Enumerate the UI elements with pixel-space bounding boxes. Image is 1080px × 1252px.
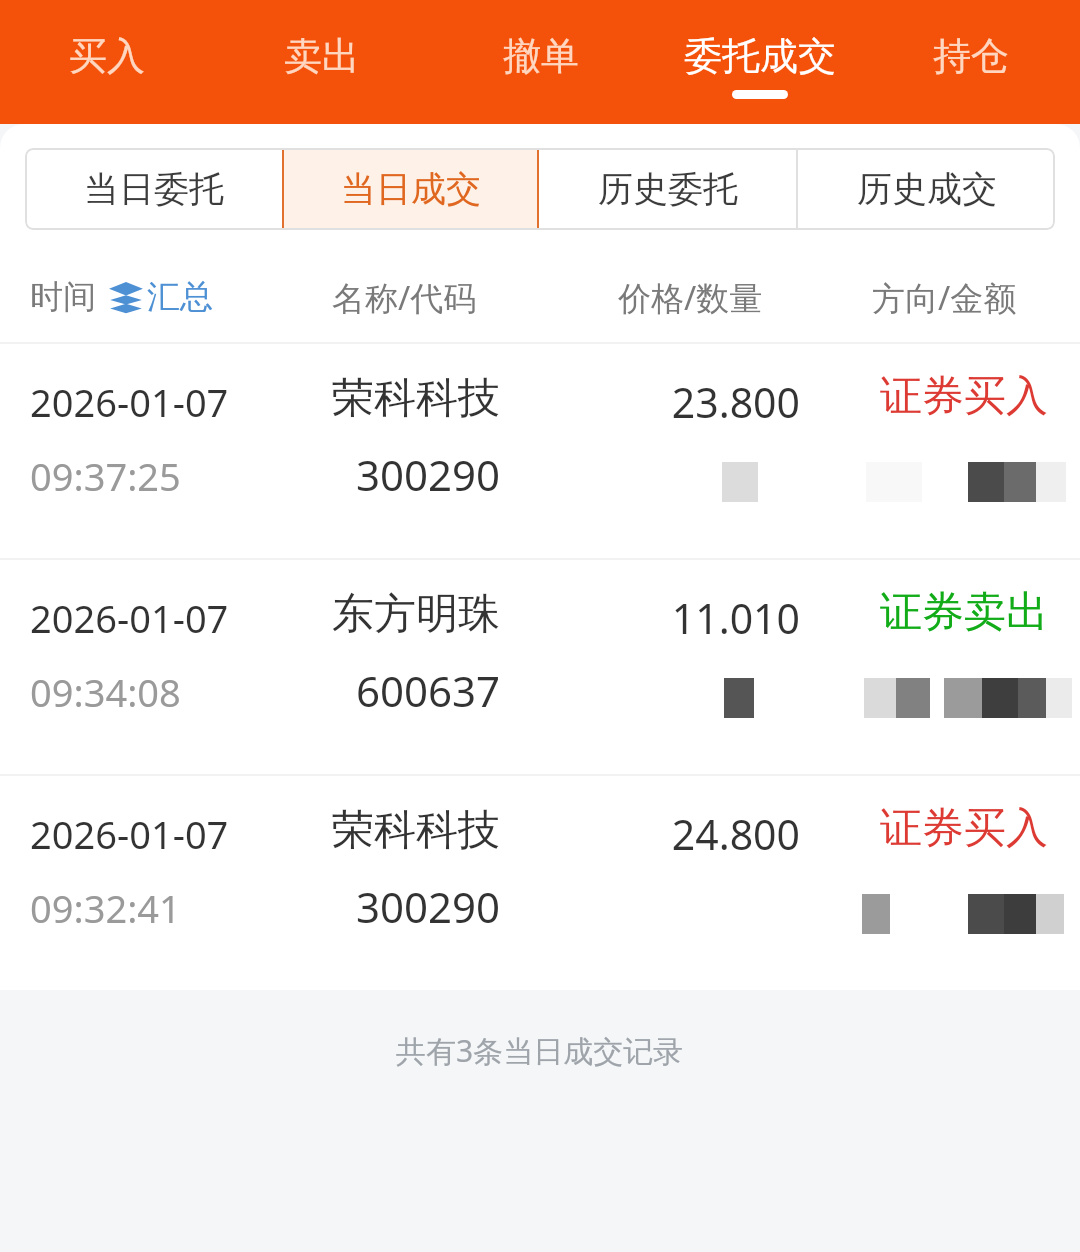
- staticText: 历史成交: [857, 167, 997, 211]
- staticText: 09:37:25: [30, 450, 181, 502]
- staticText: 汇总: [147, 276, 213, 318]
- staticText: 300290: [356, 446, 501, 503]
- button[interactable]: 时间: [30, 252, 213, 342]
- button[interactable]: 2026-01-07: [0, 776, 1080, 990]
- staticText: 价格/数量: [618, 275, 763, 320]
- staticText: 600637: [356, 662, 501, 719]
- button[interactable]: 卖出: [217, 0, 427, 124]
- staticText: 24.800: [671, 806, 800, 862]
- staticText: 名称/代码: [332, 275, 477, 320]
- button[interactable]: 委托成交: [655, 0, 865, 124]
- staticText: 11.010: [671, 590, 800, 646]
- staticText: 2026-01-07: [30, 808, 229, 860]
- staticText: 卖出: [284, 32, 360, 80]
- button[interactable]: 历史委托: [539, 148, 796, 230]
- button[interactable]: 2026-01-07: [0, 560, 1080, 774]
- staticText: 持仓: [933, 32, 1009, 80]
- staticText: 荣科科技: [332, 372, 500, 425]
- staticText: 证券卖出: [880, 586, 1048, 639]
- staticText: 2026-01-07: [30, 592, 229, 644]
- staticText: 共有3条当日成交记录: [396, 1030, 684, 1071]
- other: 汇总: [108, 279, 144, 315]
- staticText: 委托成交: [684, 32, 836, 80]
- button[interactable]: 当日成交: [282, 148, 539, 230]
- staticText: 时间: [30, 276, 96, 318]
- staticText: 东方明珠: [332, 588, 500, 641]
- staticText: 证券买入: [880, 370, 1048, 423]
- staticText: 300290: [356, 878, 501, 935]
- button[interactable]: 撤单: [436, 0, 646, 124]
- staticText: 荣科科技: [332, 804, 500, 857]
- button[interactable]: 买入: [2, 0, 212, 124]
- button[interactable]: 当日委托: [25, 148, 282, 230]
- staticText: 证券买入: [880, 802, 1048, 855]
- staticText: 历史委托: [598, 167, 738, 211]
- button[interactable]: 历史成交: [798, 148, 1055, 230]
- staticText: 买入: [69, 32, 145, 80]
- staticText: 撤单: [503, 32, 579, 80]
- button[interactable]: 2026-01-07: [0, 344, 1080, 558]
- staticText: 方向/金额: [872, 275, 1017, 320]
- staticText: 当日委托: [84, 167, 224, 211]
- staticText: 当日成交: [341, 167, 481, 211]
- button[interactable]: 持仓: [866, 0, 1076, 124]
- staticText: 23.800: [671, 374, 800, 430]
- staticText: 09:34:08: [30, 666, 181, 718]
- staticText: 2026-01-07: [30, 376, 229, 428]
- staticText: 09:32:41: [30, 882, 181, 934]
